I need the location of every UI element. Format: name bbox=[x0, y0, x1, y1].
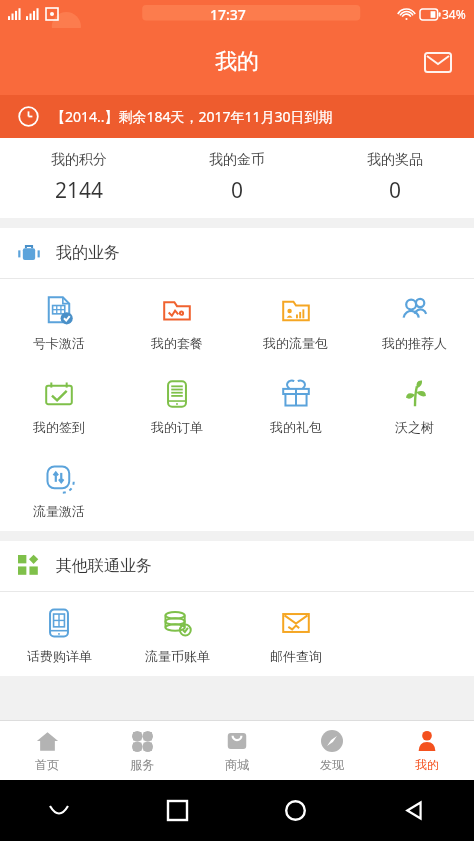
staticText: 我的订单 bbox=[151, 419, 203, 435]
staticText: 服务 bbox=[130, 757, 154, 772]
staticText: 流量币账单 bbox=[145, 648, 210, 664]
button[interactable]: Home bbox=[236, 780, 355, 841]
button[interactable]: 流量币账单 bbox=[118, 592, 236, 676]
staticText: 我的 bbox=[215, 48, 259, 76]
button[interactable]: 【2014..】剩余184天，2017年11月30日到期 bbox=[0, 95, 474, 138]
staticText: 我的礼包 bbox=[270, 419, 322, 435]
button[interactable]: Hide bbox=[0, 780, 118, 841]
staticText: 我的签到 bbox=[33, 419, 85, 435]
staticText: 0 bbox=[231, 176, 244, 205]
button[interactable]: 其他联通业务 bbox=[0, 541, 474, 591]
button[interactable]: 我的礼包 bbox=[236, 363, 355, 447]
button[interactable]: 流量激活 bbox=[0, 447, 118, 531]
button[interactable]: 号卡激活 bbox=[0, 279, 118, 363]
staticText: 沃之树 bbox=[395, 419, 434, 435]
staticText: 【2014..】剩余184天，2017年11月30日到期 bbox=[51, 107, 333, 126]
staticText: 我的金币 bbox=[209, 151, 265, 169]
staticText: 号卡激活 bbox=[33, 335, 85, 351]
button[interactable]: 首页 bbox=[0, 721, 94, 780]
staticText: 我的套餐 bbox=[151, 335, 203, 351]
staticText: 我的奖品 bbox=[367, 151, 423, 169]
button[interactable]: Back bbox=[355, 780, 474, 841]
staticText: 17:37 bbox=[210, 5, 246, 24]
button[interactable]: 我的 bbox=[379, 721, 474, 780]
staticText: 我的推荐人 bbox=[382, 335, 447, 351]
staticText: 话费购详单 bbox=[27, 648, 92, 664]
button[interactable]: 发现 bbox=[284, 721, 379, 780]
staticText: 商城 bbox=[225, 757, 249, 772]
button[interactable]: 我的流量包 bbox=[236, 279, 355, 363]
staticText: 我的积分 bbox=[51, 151, 107, 169]
staticText: 邮件查询 bbox=[270, 648, 322, 664]
staticText: 2144 bbox=[55, 176, 104, 205]
staticText: 首页 bbox=[35, 757, 59, 772]
button[interactable]: 我的订单 bbox=[118, 363, 236, 447]
staticText: 流量激活 bbox=[33, 503, 85, 519]
button[interactable]: 我的金币 bbox=[158, 138, 316, 218]
button[interactable]: 服务 bbox=[94, 721, 189, 780]
staticText: 发现 bbox=[320, 757, 344, 772]
button[interactable]: 消息 bbox=[416, 40, 460, 84]
button[interactable]: 商城 bbox=[189, 721, 284, 780]
button[interactable]: 沃之树 bbox=[355, 363, 474, 447]
staticText: 34% bbox=[442, 6, 466, 22]
staticText: 0 bbox=[389, 176, 402, 205]
button[interactable]: 我的奖品 bbox=[316, 138, 474, 218]
button[interactable]: 我的业务 bbox=[0, 228, 474, 278]
button[interactable]: 我的签到 bbox=[0, 363, 118, 447]
button[interactable]: 我的推荐人 bbox=[355, 279, 474, 363]
staticText: 我的流量包 bbox=[263, 335, 328, 351]
button[interactable]: 我的套餐 bbox=[118, 279, 236, 363]
button[interactable]: 我的积分 bbox=[0, 138, 158, 218]
button[interactable]: 邮件查询 bbox=[236, 592, 355, 676]
staticText: 我的 bbox=[415, 757, 439, 772]
button[interactable]: Recents bbox=[118, 780, 236, 841]
staticText: 我的业务 bbox=[56, 243, 120, 263]
staticText: 其他联通业务 bbox=[56, 556, 152, 576]
button[interactable]: 话费购详单 bbox=[0, 592, 118, 676]
